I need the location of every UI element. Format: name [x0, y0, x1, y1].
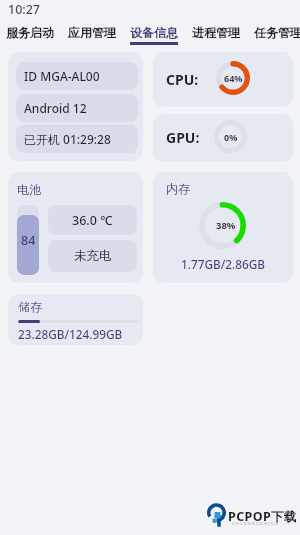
staticText: 任务管理: [254, 25, 300, 40]
button[interactable]: 进程管理: [192, 18, 240, 52]
staticText: 84: [21, 232, 36, 249]
staticText: 内存: [166, 181, 190, 196]
staticText: Android 12: [24, 100, 87, 116]
staticText: 64%: [224, 72, 243, 84]
button[interactable]: Battery 84 percent: [17, 205, 39, 275]
button[interactable]: 已开机 01:29:28: [16, 125, 138, 153]
staticText: 设备信息: [130, 25, 178, 40]
staticText: 23.28GB/124.99GB: [18, 326, 123, 342]
button[interactable]: ID MGA-AL00: [16, 62, 138, 90]
staticText: 储存: [18, 299, 42, 314]
staticText: 已开机 01:29:28: [24, 131, 111, 147]
staticText: PCPOP下载: [228, 508, 298, 525]
button[interactable]: 36.0 ℃: [48, 205, 137, 235]
staticText: CPU:: [166, 70, 199, 89]
button[interactable]: GPU:: [153, 114, 293, 162]
staticText: 电池: [17, 182, 41, 197]
staticText: 服务启动: [6, 25, 54, 40]
staticText: 1.77GB/2.86GB: [181, 256, 266, 272]
staticText: ZHONGGUANCUN: [232, 521, 280, 526]
button[interactable]: 应用管理: [68, 18, 116, 52]
button[interactable]: CPU:: [153, 52, 293, 107]
staticText: 进程管理: [192, 25, 240, 40]
staticText: 36.0 ℃: [72, 212, 113, 229]
staticText: 应用管理: [68, 25, 116, 40]
staticText: 38%: [216, 219, 236, 232]
button[interactable]: 设备信息: [130, 18, 178, 52]
button[interactable]: Android 12: [16, 94, 138, 122]
button[interactable]: 服务启动: [6, 18, 54, 52]
button[interactable]: 未充电: [48, 240, 137, 272]
staticText: 0%: [224, 131, 238, 143]
staticText: GPU:: [166, 128, 200, 147]
staticText: 未充电: [74, 248, 112, 264]
staticText: 10:27: [8, 1, 41, 18]
staticText: ID MGA-AL00: [24, 68, 100, 84]
button[interactable]: 任务管理: [254, 18, 300, 52]
